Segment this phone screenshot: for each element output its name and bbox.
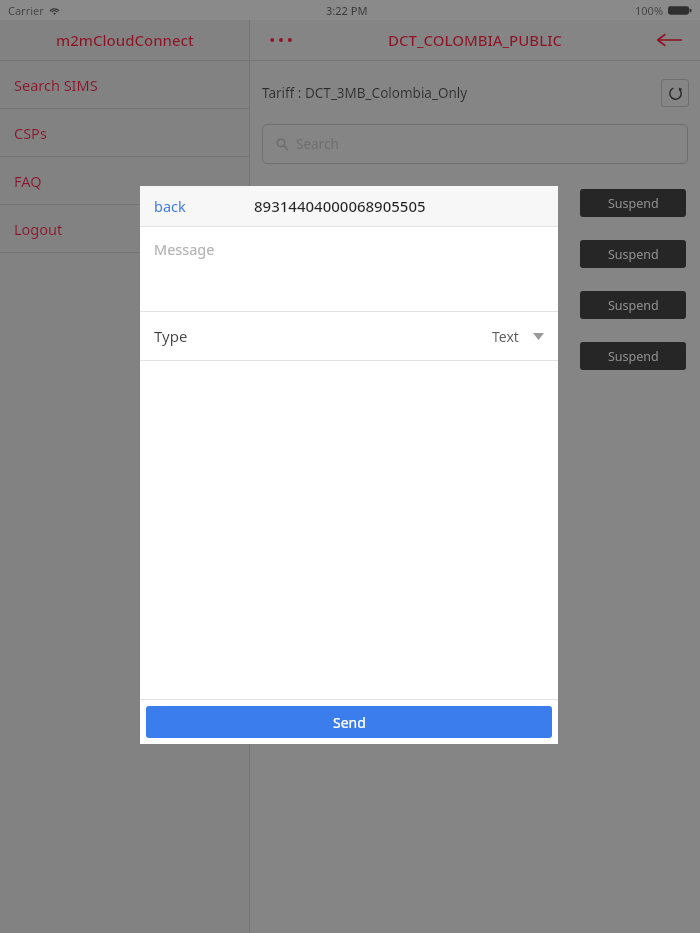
staticText: Suspend: [608, 297, 659, 314]
button[interactable]: Type: [140, 312, 558, 360]
button[interactable]: m2mCloudConnect: [0, 20, 249, 60]
staticText: 89314404000068905505: [254, 196, 426, 216]
staticText: Carrier: [8, 3, 44, 18]
staticText: Send: [333, 713, 366, 732]
button[interactable]: Suspend: [580, 240, 686, 268]
button[interactable]: Suspend: [580, 189, 686, 217]
staticText: Text: [492, 327, 519, 346]
button[interactable]: FAQ: [0, 157, 249, 204]
staticText: Suspend: [608, 246, 659, 263]
button[interactable]: Message: [140, 227, 558, 311]
staticText: Search: [296, 135, 339, 153]
staticText: Tariff : DCT_3MB_Colombia_Only: [262, 84, 468, 102]
button[interactable]: Back: [652, 25, 686, 55]
staticText: Logout: [14, 219, 63, 239]
staticText: Type: [154, 326, 188, 346]
button[interactable]: CSPs: [0, 109, 249, 156]
staticText: DCT_COLOMBIA_PUBLIC: [388, 30, 562, 50]
button[interactable]: Search: [262, 124, 688, 164]
button[interactable]: Logout: [0, 205, 249, 252]
button[interactable]: Send: [146, 706, 552, 738]
staticText: FAQ: [14, 171, 42, 191]
button[interactable]: Suspend: [580, 291, 686, 319]
staticText: Search SIMS: [14, 75, 98, 95]
button[interactable]: More options: [264, 25, 298, 55]
button[interactable]: Suspend: [580, 342, 686, 370]
staticText: 3:22 PM: [326, 3, 368, 18]
staticText: Message: [154, 239, 215, 259]
staticText: CSPs: [14, 123, 47, 143]
button[interactable]: back: [150, 192, 190, 220]
staticText: 100%: [635, 3, 664, 18]
staticText: m2mCloudConnect: [56, 30, 194, 50]
button[interactable]: Search SIMS: [0, 61, 249, 108]
staticText: back: [154, 196, 186, 216]
staticText: Suspend: [608, 348, 659, 365]
staticText: Suspend: [608, 195, 659, 212]
button[interactable]: Refresh: [661, 79, 689, 107]
